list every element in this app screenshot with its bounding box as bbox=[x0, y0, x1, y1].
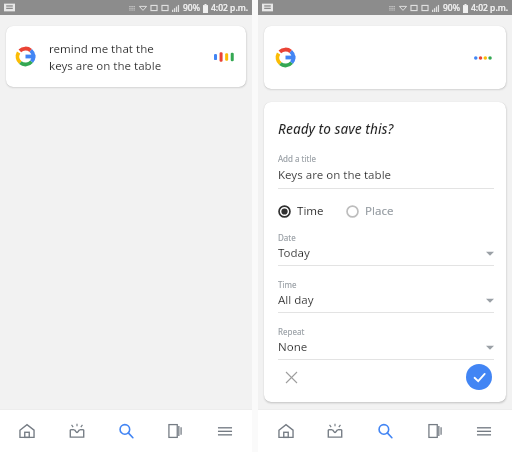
staticText: Keys are on the table bbox=[278, 167, 392, 183]
button[interactable]: Date bbox=[278, 232, 494, 266]
button[interactable]: Time bbox=[278, 203, 324, 219]
staticText: Date bbox=[278, 232, 296, 243]
button[interactable]: Collections bbox=[413, 410, 457, 452]
staticText: 90% bbox=[443, 2, 460, 14]
staticText: 90% bbox=[183, 2, 200, 14]
button[interactable]: remind me that the keys are on the table bbox=[6, 26, 246, 87]
button[interactable]: Save bbox=[466, 364, 492, 390]
button[interactable]: Search bbox=[104, 410, 148, 452]
button[interactable]: Home bbox=[5, 410, 49, 452]
button[interactable]: Snapshot bbox=[55, 410, 99, 452]
staticText: Time bbox=[297, 203, 324, 219]
button[interactable]: Place bbox=[346, 203, 394, 219]
staticText: Ready to save this? bbox=[278, 120, 394, 138]
button[interactable]: Collections bbox=[153, 410, 197, 452]
staticText: 4:02 p.m. bbox=[471, 2, 509, 14]
button[interactable]: More bbox=[203, 410, 247, 452]
staticText: Time bbox=[278, 279, 297, 290]
staticText: remind me that the keys are on the table bbox=[49, 41, 162, 73]
staticText: None bbox=[278, 339, 308, 355]
staticText: 4:02 p.m. bbox=[211, 2, 249, 14]
button[interactable]: Snapshot bbox=[313, 410, 357, 452]
button[interactable]: Cancel bbox=[278, 364, 304, 390]
button[interactable]: Time bbox=[278, 279, 494, 313]
staticText: All day bbox=[278, 292, 314, 308]
button[interactable] bbox=[264, 26, 506, 89]
button[interactable]: Home bbox=[264, 410, 308, 452]
staticText: Add a title bbox=[278, 153, 317, 164]
staticText: Today bbox=[278, 245, 310, 261]
staticText: Place bbox=[365, 203, 394, 219]
staticText: Repeat bbox=[278, 326, 305, 337]
button[interactable]: Search bbox=[363, 410, 407, 452]
button[interactable]: Repeat bbox=[278, 326, 494, 360]
button[interactable]: More bbox=[462, 410, 506, 452]
